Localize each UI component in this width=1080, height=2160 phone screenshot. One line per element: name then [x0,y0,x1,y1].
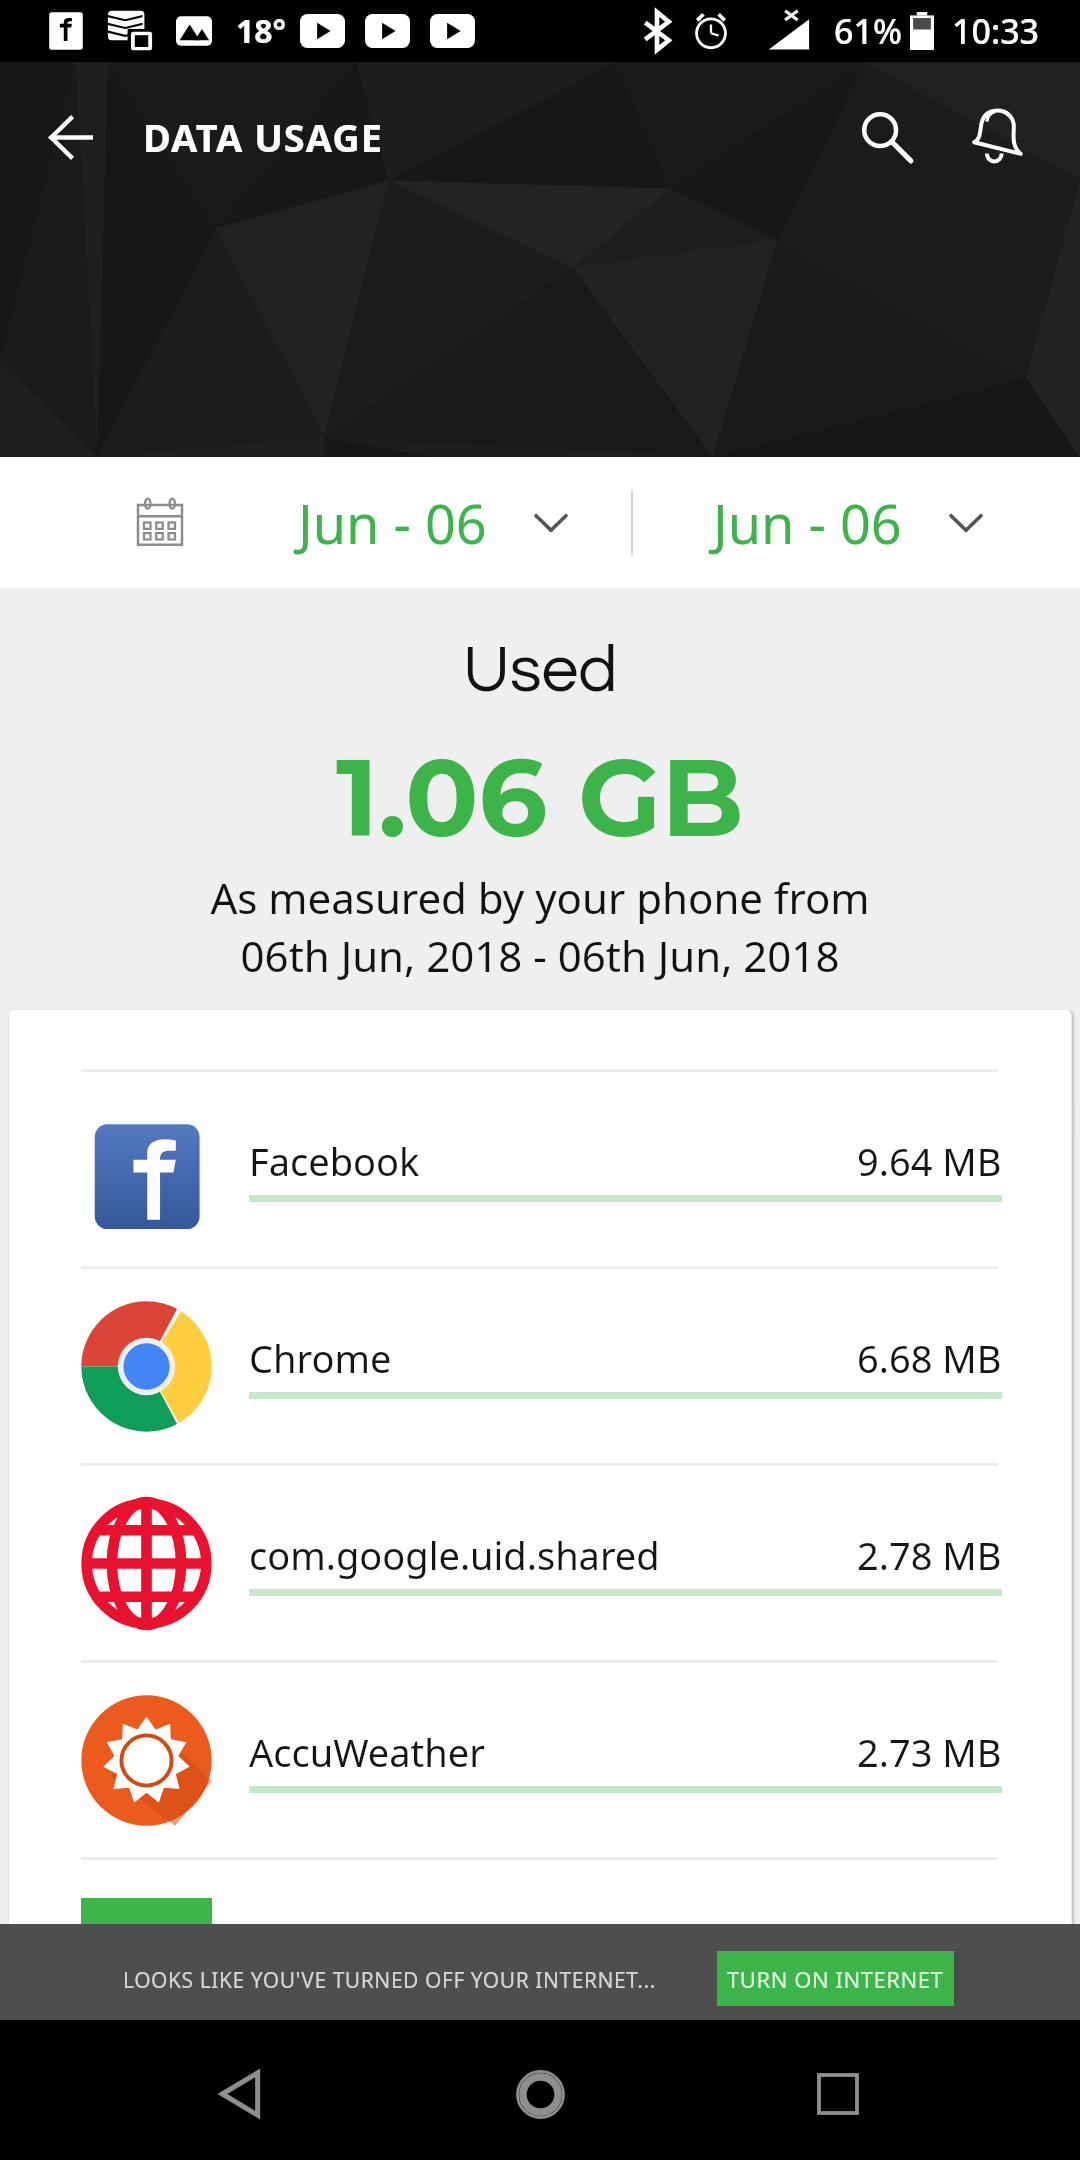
staticText: 10:33 [952,8,1040,54]
staticText: Jun - 06 [713,486,902,560]
staticText: 6.68 MB [857,1332,1002,1384]
button[interactable]: Jun - 06 [713,457,1043,588]
staticText: Used [463,637,618,705]
staticText: 61% [834,8,902,54]
button[interactable]: Home [470,2020,610,2160]
staticText: As measured by your phone from 06th Jun,… [210,869,870,984]
button[interactable]: Back [170,2020,310,2160]
button[interactable]: Chrome [9,1269,1071,1463]
button[interactable]: Back [25,91,117,183]
staticText: Chrome [249,1332,392,1384]
staticText: 2.78 MB [857,1529,1002,1581]
staticText: 9.64 MB [857,1135,1002,1187]
button[interactable]: Notifications [950,89,1046,185]
button[interactable]: Facebook [9,1072,1071,1266]
staticText: 2.73 MB [857,1726,1002,1778]
staticText: TURN ON INTERNET [727,1964,944,1994]
button[interactable]: AccuWeather [9,1663,1071,1857]
staticText: LOOKS LIKE YOU'VE TURNED OFF YOUR INTERN… [123,1966,656,1995]
staticText: com.google.uid.shared [249,1529,660,1581]
button[interactable]: Jun - 06 [298,457,608,588]
button[interactable]: Recents [768,2020,908,2160]
staticText: DATA USAGE [143,111,384,163]
staticText: AccuWeather [249,1726,485,1778]
staticText: Facebook [249,1135,420,1187]
staticText: Jun - 06 [298,486,487,560]
button[interactable]: TURN ON INTERNET [717,1951,954,2006]
staticText: 18° [236,9,287,53]
staticText: 1.06 GB [336,731,744,863]
button[interactable]: com.google.uid.shared [9,1466,1071,1660]
button[interactable]: Search [838,89,934,185]
